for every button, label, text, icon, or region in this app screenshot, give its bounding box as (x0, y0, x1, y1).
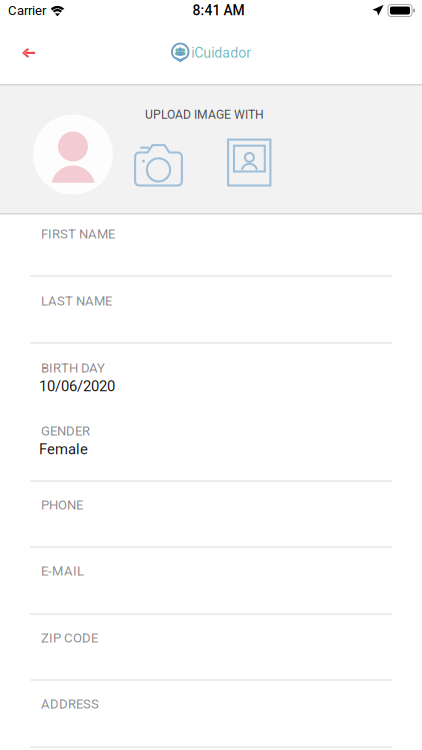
staticText: PHONE (41, 497, 83, 513)
staticText: Carrier (8, 3, 46, 18)
staticText: UPLOAD IMAGE WITH (145, 107, 264, 122)
staticText: BIRTH DAY (41, 360, 105, 376)
staticText: 10/06/2020 (39, 377, 115, 395)
staticText: ADDRESS (41, 696, 99, 712)
button[interactable] (0, 214, 422, 275)
staticText: E-MAIL (41, 563, 84, 579)
button[interactable]: Take a photo (134, 138, 183, 186)
button[interactable]: Back (0, 32, 55, 74)
staticText: 8:41 AM (192, 2, 244, 19)
staticText: FIRST NAME (41, 226, 115, 242)
staticText: Female (39, 440, 88, 458)
button[interactable] (0, 480, 422, 546)
staticText: GENDER (41, 423, 90, 439)
button[interactable] (0, 546, 422, 613)
button[interactable] (0, 613, 422, 679)
staticText: iCuidador (191, 45, 251, 61)
button[interactable]: Choose from library (227, 138, 271, 186)
button[interactable] (0, 405, 422, 480)
staticText: ZIP CODE (41, 630, 98, 646)
button[interactable] (0, 275, 422, 342)
button[interactable] (0, 342, 422, 405)
button[interactable] (0, 679, 422, 746)
staticText: LAST NAME (41, 293, 112, 309)
